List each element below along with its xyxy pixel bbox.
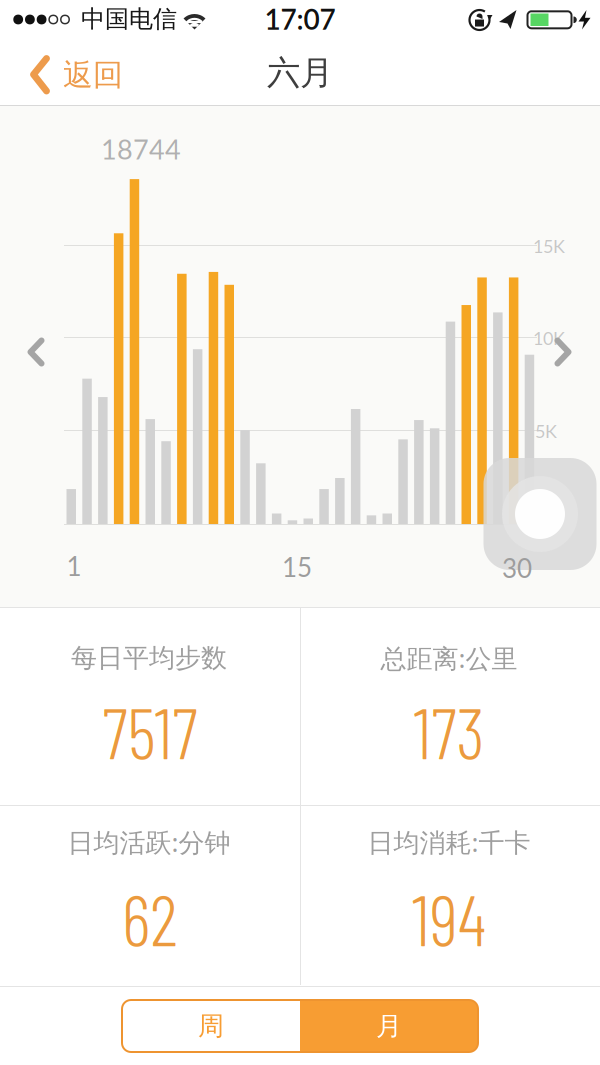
button[interactable]: AssistiveTouch (483, 458, 596, 570)
button[interactable]: 下一月 (554, 338, 571, 366)
button[interactable]: 月 (300, 1000, 478, 1052)
staticText: 62 (122, 876, 178, 960)
staticText: 日均活跃:分钟 (67, 824, 230, 860)
staticText: 日均消耗:千卡 (367, 824, 530, 860)
staticText: 18744 (101, 133, 181, 165)
staticText: 周 (198, 1010, 224, 1042)
button[interactable]: 周 (122, 1000, 300, 1052)
staticText: 1 (66, 550, 81, 582)
staticText: 194 (412, 876, 486, 960)
staticText: 月 (376, 1010, 402, 1042)
staticText: 173 (413, 689, 484, 773)
staticText: 中国电信 (81, 4, 177, 34)
staticText: 30 (502, 552, 532, 584)
staticText: 15K (533, 235, 565, 257)
staticText: 15 (282, 551, 312, 583)
staticText: 7517 (102, 689, 197, 773)
staticText: 10K (533, 327, 565, 349)
staticText: 每日平均步数 (71, 642, 227, 674)
staticText: 5K (535, 420, 557, 442)
button[interactable]: 上一月 (27, 338, 44, 366)
staticText: 六月 (267, 52, 333, 94)
staticText: 总距离:公里 (380, 640, 517, 676)
button[interactable]: 返回 (31, 56, 123, 94)
staticText: 17:07 (264, 2, 335, 36)
staticText: 返回 (63, 56, 123, 94)
